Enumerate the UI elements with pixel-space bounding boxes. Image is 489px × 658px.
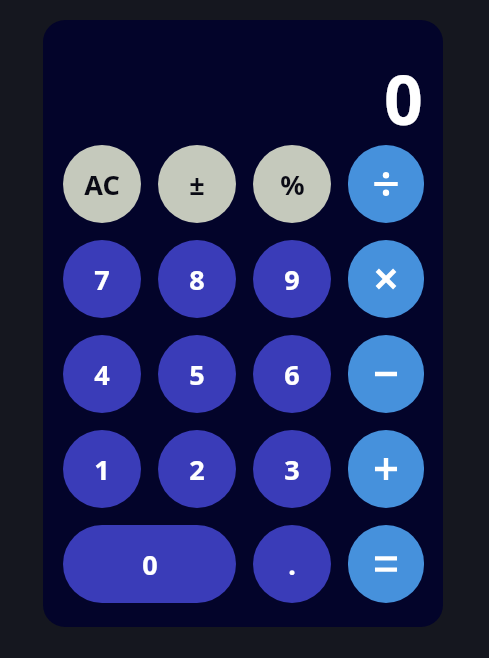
button[interactable]: 0 <box>63 525 236 603</box>
staticText: % <box>280 166 305 203</box>
staticText: ± <box>189 166 205 203</box>
button[interactable]: % <box>253 145 331 223</box>
button[interactable]: Divide <box>348 145 424 223</box>
button[interactable]: Subtract <box>348 335 424 413</box>
staticText: 2 <box>189 451 205 488</box>
button[interactable]: Equals <box>348 525 424 603</box>
button[interactable]: Add <box>348 430 424 508</box>
staticText: 3 <box>284 451 300 488</box>
button[interactable]: . <box>253 525 331 603</box>
staticText: 1 <box>94 451 110 488</box>
button[interactable]: 1 <box>63 430 141 508</box>
button[interactable]: 2 <box>158 430 236 508</box>
button[interactable]: 5 <box>158 335 236 413</box>
staticText: 6 <box>284 356 300 393</box>
staticText: 4 <box>94 356 110 393</box>
button[interactable]: 7 <box>63 240 141 318</box>
staticText: 8 <box>189 261 205 298</box>
staticText: 0 <box>142 546 158 583</box>
staticText: AC <box>84 166 120 203</box>
button[interactable]: ± <box>158 145 236 223</box>
button[interactable]: Multiply <box>348 240 424 318</box>
button[interactable]: 6 <box>253 335 331 413</box>
staticText: 9 <box>284 261 300 298</box>
staticText: . <box>288 546 296 583</box>
button[interactable]: 4 <box>63 335 141 413</box>
staticText: 7 <box>94 261 110 298</box>
staticText: 5 <box>189 356 205 393</box>
button[interactable]: 9 <box>253 240 331 318</box>
button[interactable]: 8 <box>158 240 236 318</box>
button[interactable]: AC <box>63 145 141 223</box>
staticText: 0 <box>384 52 423 145</box>
button[interactable]: 3 <box>253 430 331 508</box>
